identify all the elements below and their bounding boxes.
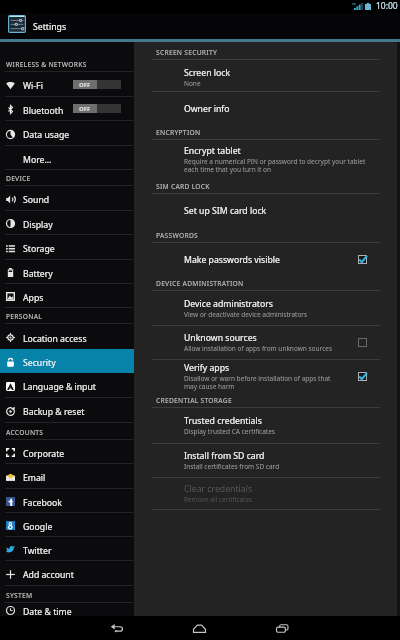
staticText: DEVICE — [6, 174, 31, 183]
button[interactable]: Display — [0, 211, 134, 234]
staticText: SCREEN SECURITY — [156, 48, 218, 57]
staticText: Backup & reset — [23, 406, 85, 418]
staticText: 10:00 — [376, 0, 398, 12]
staticText: Twitter — [23, 545, 52, 557]
staticText: Clear credentials — [184, 483, 253, 495]
button[interactable]: Owner info — [134, 92, 400, 125]
staticText: Trusted credentials — [184, 415, 262, 427]
button[interactable]: Screen lock — [134, 60, 400, 91]
button[interactable]: Data usage — [0, 121, 134, 145]
staticText: WIRELESS & NETWORKS — [6, 60, 87, 69]
staticText: More... — [23, 154, 52, 166]
button[interactable]: More... — [0, 146, 134, 169]
staticText: Apps — [23, 292, 44, 304]
button[interactable]: Back — [75, 616, 158, 640]
staticText: Location access — [23, 333, 87, 345]
button[interactable]: Make passwords visible — [134, 243, 400, 276]
staticText: Security — [23, 357, 56, 369]
button[interactable]: Set up SIM card lock — [134, 194, 400, 228]
staticText: PERSONAL — [6, 312, 43, 321]
staticText: View or deactivate device administrators — [184, 310, 308, 319]
staticText: Google — [23, 521, 53, 533]
staticText: Device administrators — [184, 298, 273, 310]
staticText: Remove all certificates — [184, 495, 253, 504]
staticText: OFF — [79, 81, 91, 89]
staticText: Owner info — [184, 103, 230, 115]
staticText: Display — [23, 219, 53, 231]
staticText: Storage — [23, 243, 55, 255]
button[interactable]: Facebook — [0, 489, 134, 512]
staticText: Sound — [23, 194, 50, 206]
staticText: Settings — [33, 21, 67, 33]
staticText: Facebook — [23, 497, 62, 509]
button[interactable]: Storage — [0, 235, 134, 259]
button[interactable]: Bluetooth — [0, 97, 134, 120]
staticText: Date & time — [23, 606, 72, 618]
staticText: DEVICE ADMINISTRATION — [156, 279, 244, 288]
staticText: Require a numerical PIN or password to d… — [184, 157, 366, 174]
button[interactable]: Backup & reset — [0, 398, 134, 422]
button[interactable]: Language & input — [0, 373, 134, 397]
staticText: Encrypt tablet — [184, 145, 241, 157]
button[interactable]: Security — [0, 349, 134, 373]
staticText: Unknown sources — [184, 332, 257, 344]
staticText: SIM CARD LOCK — [156, 182, 210, 191]
button[interactable]: Sound — [0, 186, 134, 210]
staticText: Install certificates from SD card — [184, 462, 280, 471]
button[interactable]: Apps — [0, 284, 134, 307]
staticText: Disallow or warn before installation of … — [184, 374, 331, 391]
staticText: ACCOUNTS — [6, 428, 44, 437]
button[interactable]: Location access — [0, 324, 134, 349]
button[interactable]: Corporate — [0, 440, 134, 463]
button[interactable]: Recent apps — [241, 616, 324, 640]
button[interactable]: Trusted credentials — [134, 408, 400, 443]
button[interactable]: Wi-Fi — [0, 72, 134, 96]
button[interactable]: Encrypt tablet — [134, 140, 400, 179]
button[interactable]: Home — [158, 616, 241, 640]
staticText: Bluetooth — [23, 105, 64, 117]
staticText: Add account — [23, 569, 74, 581]
staticText: Screen lock — [184, 67, 231, 79]
staticText: CREDENTIAL STORAGE — [156, 396, 232, 405]
button[interactable]: Install from SD card — [134, 444, 400, 477]
staticText: None — [184, 79, 201, 88]
button[interactable]: Unknown sources — [134, 326, 400, 359]
staticText: Allow installation of apps from unknown … — [184, 344, 333, 353]
button[interactable]: Twitter — [0, 537, 134, 560]
staticText: SYSTEM — [6, 591, 33, 600]
staticText: Verify apps — [184, 362, 230, 374]
button[interactable]: Verify apps — [134, 360, 400, 393]
staticText: Display trusted CA certificates — [184, 427, 275, 436]
button[interactable]: Settings — [0, 13, 400, 39]
button[interactable]: Email — [0, 464, 134, 488]
staticText: Wi-Fi — [23, 80, 43, 92]
staticText: OFF — [79, 105, 91, 113]
staticText: Set up SIM card lock — [184, 205, 267, 217]
staticText: Install from SD card — [184, 450, 265, 462]
staticText: Battery — [23, 268, 53, 280]
button[interactable]: Google — [0, 513, 134, 536]
staticText: Language & input — [23, 381, 96, 393]
staticText: Make passwords visible — [184, 254, 280, 266]
staticText: PASSWORDS — [156, 231, 198, 240]
staticText: Corporate — [23, 448, 65, 460]
staticText: ENCRYPTION — [156, 128, 201, 137]
button[interactable]: Device administrators — [134, 291, 400, 325]
button[interactable]: Clear credentials — [134, 478, 400, 509]
button[interactable]: Date & time — [0, 603, 134, 616]
button[interactable]: Battery — [0, 260, 134, 283]
staticText: Data usage — [23, 129, 70, 141]
button[interactable]: Add account — [0, 561, 134, 585]
staticText: Email — [23, 472, 46, 484]
